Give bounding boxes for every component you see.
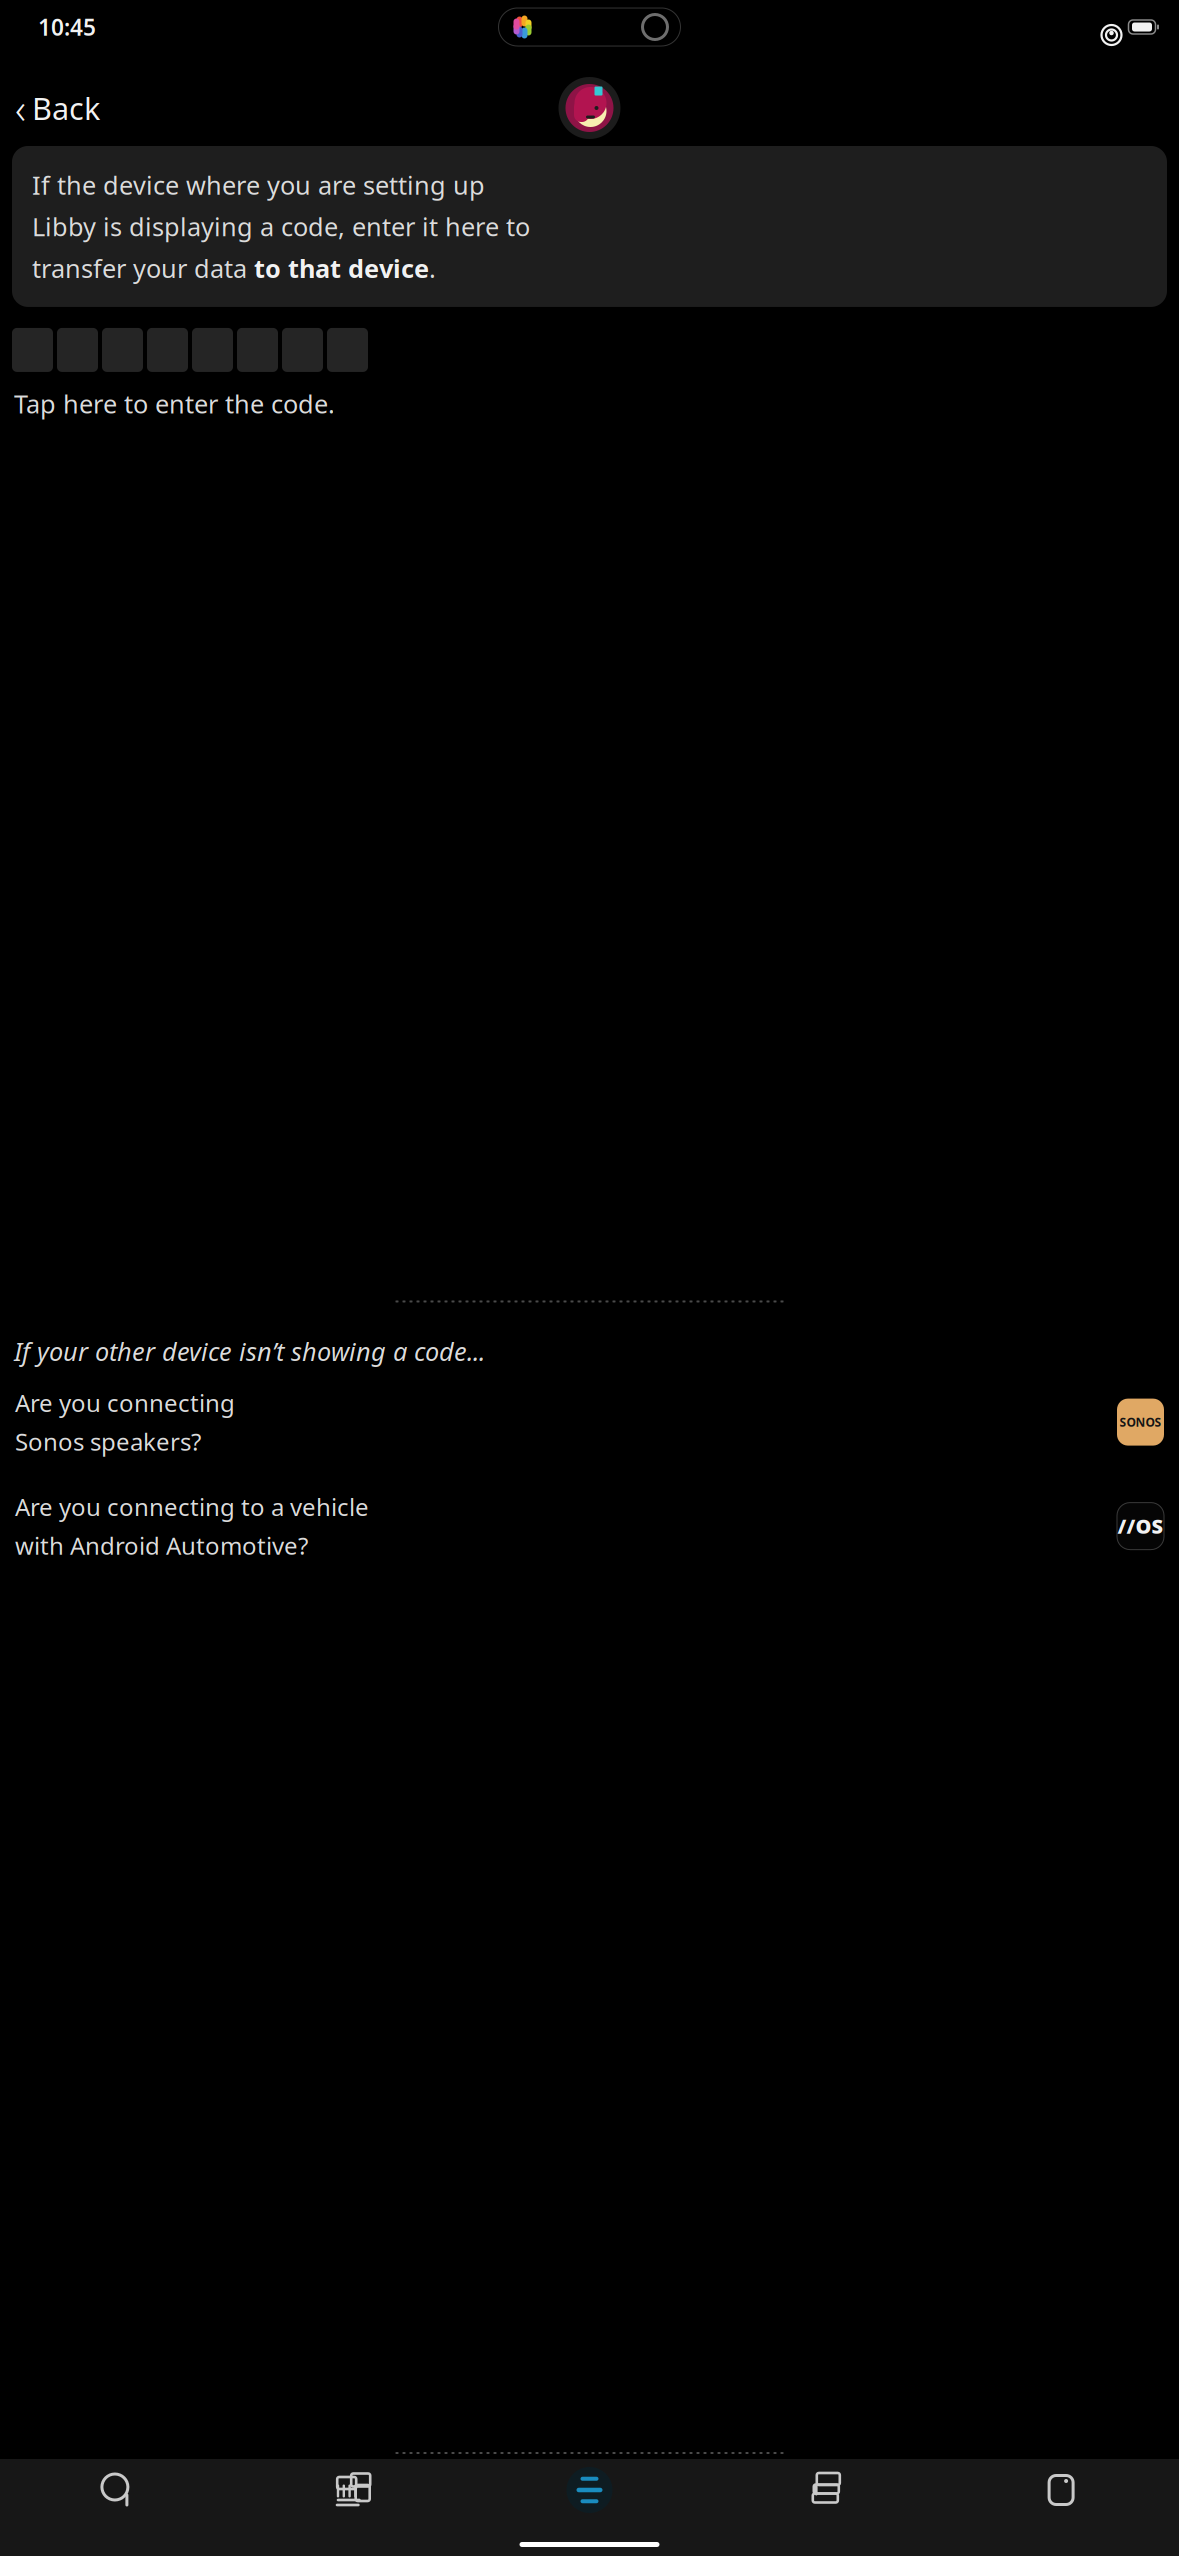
button[interactable]: ‹ xyxy=(5,73,110,143)
staticText: Tap here to enter the code. xyxy=(14,387,335,420)
staticText: Libby is displaying a code, enter it her… xyxy=(32,210,530,243)
button[interactable]: Are you connecting to a vehicle xyxy=(0,1480,1179,1572)
button[interactable]: Shelf xyxy=(707,2469,943,2511)
button[interactable]: Search xyxy=(0,2470,236,2510)
staticText: Sonos speakers? xyxy=(15,1426,201,1457)
staticText: SONOS xyxy=(1119,1414,1161,1430)
staticText: ‹ xyxy=(15,81,26,135)
button[interactable]: Profile xyxy=(558,77,620,139)
staticText: Are you connecting xyxy=(15,1387,235,1419)
button[interactable]: Are you connecting xyxy=(0,1376,1179,1468)
staticText: If your other device isn’t showing a cod… xyxy=(14,1334,485,1368)
staticText: //OS xyxy=(1117,1513,1163,1539)
button[interactable]: Library xyxy=(236,2469,472,2511)
staticText: with Android Automotive? xyxy=(15,1530,308,1561)
staticText: Are you connecting to a vehicle xyxy=(15,1491,369,1523)
staticText: If the device where you are setting up xyxy=(32,168,485,202)
staticText: to that device xyxy=(254,251,429,285)
staticText: Back xyxy=(32,88,100,128)
staticText: transfer your data xyxy=(32,251,254,285)
button[interactable]: Menu xyxy=(472,2467,707,2513)
staticText: 10:45 xyxy=(38,12,96,42)
button[interactable]: Tags xyxy=(943,2470,1179,2510)
button[interactable]: Tap here to enter the code. xyxy=(0,307,1179,420)
staticText: . xyxy=(429,251,436,285)
